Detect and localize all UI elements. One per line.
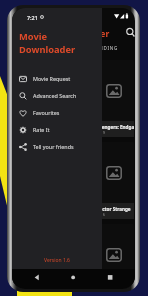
staticText: Iron Man bbox=[15, 288, 52, 289]
button[interactable]: Movie Request bbox=[12, 70, 102, 87]
staticText: Advanced Search bbox=[33, 92, 77, 99]
button[interactable]: Advanced Search bbox=[12, 87, 102, 104]
button[interactable]: Thor: Ragnarok bbox=[94, 224, 134, 289]
staticText: Doctor Strange bbox=[96, 206, 134, 212]
button[interactable]: Black Panther bbox=[53, 224, 93, 289]
staticText: Avengers: Endgame bbox=[96, 124, 134, 130]
staticText: 2008 bbox=[15, 130, 25, 135]
button[interactable]: Favourites bbox=[12, 104, 102, 121]
button[interactable]: Black Panther bbox=[53, 60, 93, 137]
button[interactable]: Avengers: Endgame bbox=[94, 60, 134, 137]
button[interactable]: Iron Man bbox=[13, 142, 52, 219]
staticText: Rate It bbox=[33, 126, 50, 133]
staticText: Thor: Ragnarok bbox=[96, 288, 134, 289]
staticText: TRENDING bbox=[89, 45, 119, 51]
button[interactable]: Tell your friends bbox=[12, 138, 102, 155]
staticText: Version 1.6 bbox=[44, 257, 70, 264]
staticText: LATEST bbox=[33, 45, 53, 51]
button[interactable]: Doctor Strange bbox=[94, 142, 134, 219]
staticText: 2019 bbox=[96, 130, 106, 135]
button[interactable]: LATEST bbox=[12, 42, 73, 54]
staticText: Movie Downloader bbox=[30, 28, 110, 40]
button[interactable]: Iron Man bbox=[13, 224, 52, 289]
staticText: Downloader bbox=[19, 43, 76, 56]
staticText: Iron Man bbox=[15, 124, 52, 130]
button[interactable]: Iron Man bbox=[13, 60, 52, 137]
button[interactable]: TRENDING bbox=[73, 42, 135, 54]
staticText: 7:21 bbox=[27, 14, 38, 21]
button[interactable]: Rate It bbox=[12, 121, 102, 138]
button[interactable]: Search bbox=[125, 27, 135, 38]
staticText: Movie bbox=[19, 30, 48, 43]
staticText: Tell your friends bbox=[33, 143, 74, 150]
staticText: 2016 bbox=[96, 212, 106, 217]
button[interactable]: Black Panther bbox=[53, 142, 93, 219]
staticText: Favourites bbox=[33, 109, 60, 116]
staticText: Movie Request bbox=[33, 75, 71, 82]
